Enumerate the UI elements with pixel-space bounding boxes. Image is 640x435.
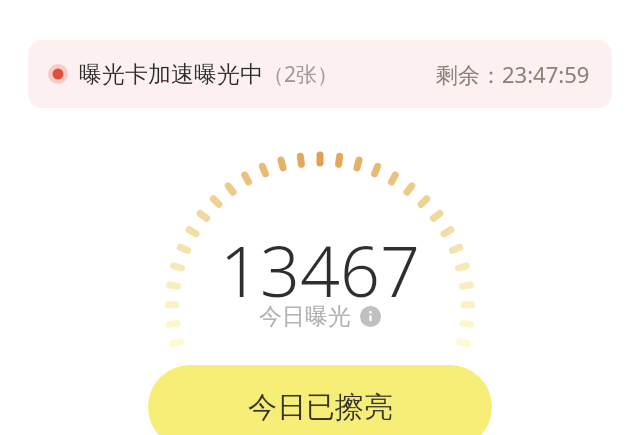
staticText: 今日曝光 xyxy=(259,302,351,331)
button[interactable]: 今日已擦亮 xyxy=(148,365,492,435)
staticText: 13467 xyxy=(0,222,640,317)
staticText: 今日已擦亮 xyxy=(248,389,393,426)
staticText: （2张） xyxy=(263,60,339,89)
staticText: 曝光卡加速曝光中 xyxy=(79,60,263,89)
staticText: 剩余：23:47:59 xyxy=(436,59,590,89)
button[interactable]: 曝光卡加速曝光中 xyxy=(28,40,612,108)
button[interactable]: Info about today's exposure xyxy=(360,306,381,327)
